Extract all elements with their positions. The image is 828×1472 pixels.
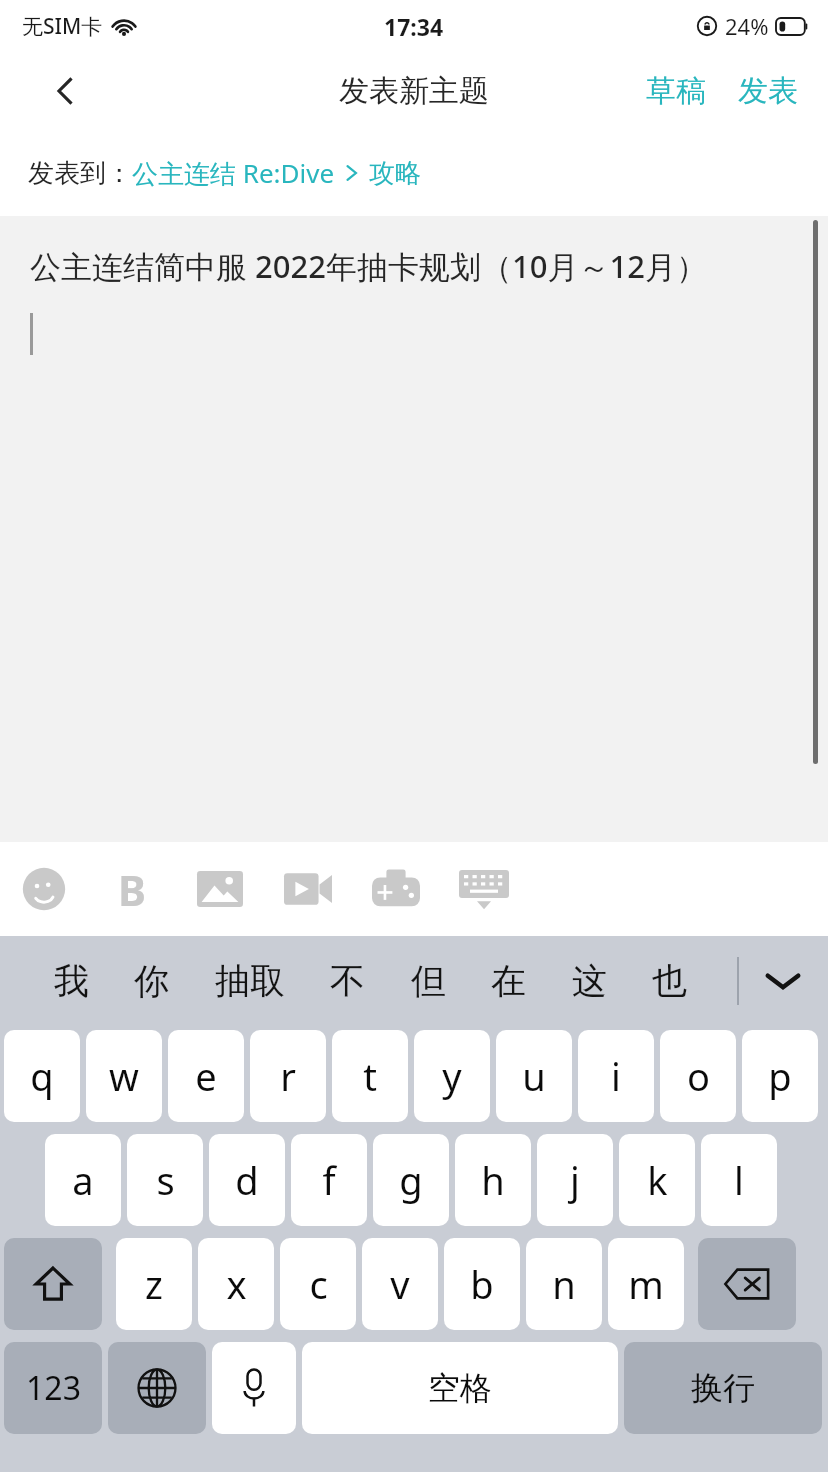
button[interactable]: 不	[324, 951, 371, 1011]
staticText: 无SIM卡	[22, 12, 103, 41]
staticText: m	[628, 1258, 664, 1310]
staticText: j	[570, 1154, 580, 1206]
button[interactable]: v	[362, 1238, 438, 1330]
button[interactable]: 收起候选	[738, 936, 828, 1026]
staticText: e	[195, 1050, 217, 1102]
staticText: n	[552, 1258, 576, 1310]
staticText: l	[734, 1154, 744, 1206]
button[interactable]: 图片	[176, 842, 264, 936]
button[interactable]: 切换语言	[108, 1342, 206, 1434]
button[interactable]: a	[45, 1134, 121, 1226]
button[interactable]: Shift	[4, 1238, 102, 1330]
button[interactable]: 加粗	[88, 842, 176, 936]
button[interactable]: 游戏	[352, 842, 440, 936]
staticText: 123	[26, 1366, 81, 1410]
button[interactable]: 这	[566, 951, 613, 1011]
button[interactable]: 退格	[698, 1238, 796, 1330]
staticText: k	[647, 1154, 668, 1206]
button[interactable]: 我	[48, 951, 95, 1011]
staticText: 发表新主题	[339, 72, 489, 110]
button[interactable]: c	[280, 1238, 356, 1330]
staticText: d	[235, 1154, 259, 1206]
button[interactable]: f	[291, 1134, 367, 1226]
staticText: 24%	[725, 11, 769, 41]
button[interactable]: 公主连结 Re:Dive	[132, 155, 421, 191]
staticText: p	[768, 1050, 792, 1102]
staticText: 抽取	[215, 959, 285, 1003]
button[interactable]: j	[537, 1134, 613, 1226]
staticText: r	[280, 1050, 296, 1102]
button[interactable]: 收起键盘	[440, 842, 528, 936]
button[interactable]: 空格	[302, 1342, 618, 1434]
button[interactable]: 视频	[264, 842, 352, 936]
button[interactable]: s	[127, 1134, 203, 1226]
button[interactable]: 123	[4, 1342, 102, 1434]
staticText: 换行	[691, 1368, 755, 1408]
button[interactable]: o	[660, 1030, 736, 1122]
staticText: 公主连结简中服 2022年抽卡规划（10月～12月）	[30, 245, 707, 287]
staticText: 我	[54, 959, 89, 1003]
staticText: 发表	[738, 72, 798, 110]
button[interactable]: 草稿	[636, 62, 716, 120]
staticText: v	[390, 1258, 410, 1310]
button[interactable]: e	[168, 1030, 244, 1122]
staticText: u	[522, 1050, 546, 1102]
staticText: s	[156, 1154, 175, 1206]
button[interactable]: p	[742, 1030, 818, 1122]
staticText: 也	[652, 959, 687, 1003]
staticText: 不	[330, 959, 365, 1003]
staticText: a	[72, 1154, 94, 1206]
staticText: 公主连结 Re:Dive	[132, 155, 335, 191]
staticText: 空格	[428, 1368, 492, 1408]
button[interactable]: 语音输入	[212, 1342, 296, 1434]
button[interactable]: 表情	[0, 842, 88, 936]
staticText: 在	[491, 959, 526, 1003]
staticText: b	[470, 1258, 494, 1310]
button[interactable]: g	[373, 1134, 449, 1226]
staticText: w	[109, 1050, 139, 1102]
button[interactable]: w	[86, 1030, 162, 1122]
staticText: q	[30, 1050, 54, 1102]
staticText: 这	[572, 959, 607, 1003]
button[interactable]: 抽取	[209, 951, 291, 1011]
button[interactable]: i	[578, 1030, 654, 1122]
staticText: 草稿	[646, 72, 706, 110]
button[interactable]: 返回	[26, 52, 104, 130]
staticText: t	[363, 1050, 377, 1102]
staticText: c	[309, 1258, 328, 1310]
staticText: 你	[134, 959, 169, 1003]
button[interactable]: x	[198, 1238, 274, 1330]
button[interactable]: 你	[128, 951, 175, 1011]
button[interactable]: h	[455, 1134, 531, 1226]
button[interactable]: 发表	[728, 62, 808, 120]
button[interactable]: 在	[485, 951, 532, 1011]
button[interactable]: y	[414, 1030, 490, 1122]
button[interactable]: m	[608, 1238, 684, 1330]
button[interactable]: r	[250, 1030, 326, 1122]
button[interactable]: d	[209, 1134, 285, 1226]
staticText: o	[687, 1050, 710, 1102]
staticText: 17:34	[384, 11, 444, 42]
staticText: B	[118, 861, 146, 918]
staticText: 但	[411, 959, 446, 1003]
button[interactable]: b	[444, 1238, 520, 1330]
button[interactable]: 也	[646, 951, 693, 1011]
button[interactable]: n	[526, 1238, 602, 1330]
staticText: g	[399, 1154, 423, 1206]
staticText: h	[481, 1154, 505, 1206]
button[interactable]: u	[496, 1030, 572, 1122]
staticText: y	[442, 1050, 462, 1102]
staticText: 发表到：	[28, 157, 132, 190]
staticText: i	[611, 1050, 621, 1102]
staticText: f	[322, 1154, 336, 1206]
button[interactable]: 换行	[624, 1342, 822, 1434]
staticText: z	[145, 1258, 163, 1310]
button[interactable]: 公主连结简中服 2022年抽卡规划（10月～12月）	[0, 216, 828, 842]
staticText: 攻略	[369, 157, 421, 190]
button[interactable]: 但	[405, 951, 452, 1011]
button[interactable]: l	[701, 1134, 777, 1226]
button[interactable]: t	[332, 1030, 408, 1122]
button[interactable]: q	[4, 1030, 80, 1122]
button[interactable]: z	[116, 1238, 192, 1330]
button[interactable]: k	[619, 1134, 695, 1226]
